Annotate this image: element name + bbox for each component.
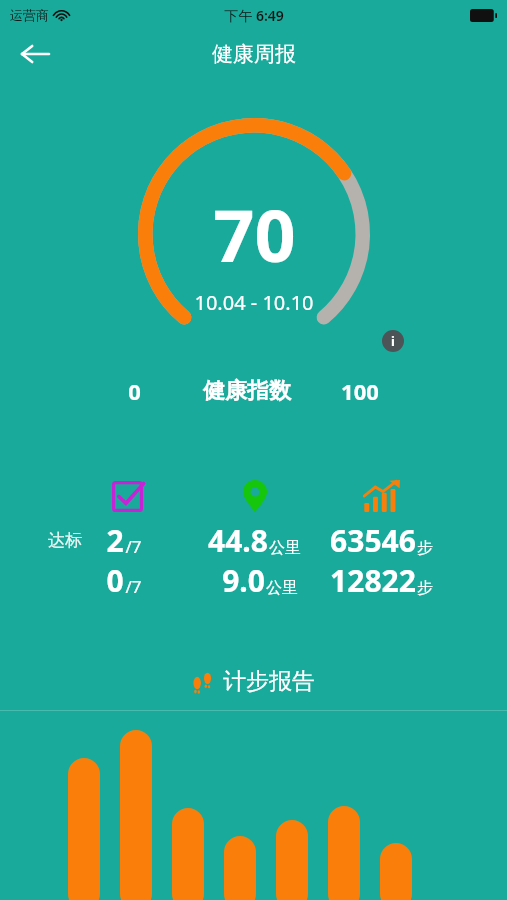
staticText: 下午 6:49 <box>224 6 284 25</box>
staticText: i <box>391 332 395 350</box>
staticText: 运营商 <box>10 7 49 23</box>
staticText: 100 <box>341 376 379 406</box>
button[interactable]: Back <box>12 31 58 77</box>
button[interactable]: 计步报告 <box>193 667 315 696</box>
staticText: 0 <box>128 376 141 406</box>
staticText: 步 <box>417 538 433 558</box>
staticText: 63546 <box>330 520 416 561</box>
staticText: 9.0 <box>222 560 265 601</box>
staticText: /7 <box>125 535 142 558</box>
staticText: 2 <box>106 520 124 561</box>
staticText: 达标 <box>48 530 82 551</box>
button[interactable]: Info <box>382 330 404 352</box>
staticText: 健康指数 <box>203 377 291 405</box>
staticText: /7 <box>125 575 142 598</box>
staticText: 0 <box>106 560 124 601</box>
staticText: 44.8 <box>208 520 268 561</box>
staticText: 70 <box>213 185 296 283</box>
staticText: 公里 <box>266 578 298 598</box>
staticText: 公里 <box>269 538 301 558</box>
staticText: 步 <box>417 578 433 598</box>
staticText: 健康周报 <box>212 41 296 67</box>
staticText: 计步报告 <box>223 667 315 696</box>
staticText: 10.04 - 10.10 <box>194 289 314 316</box>
staticText: 12822 <box>330 560 416 601</box>
